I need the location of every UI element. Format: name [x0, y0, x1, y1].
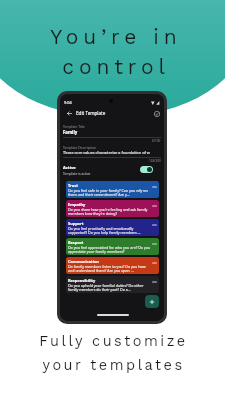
staticText: Template is active [63, 171, 91, 175]
staticText: Edit Template [76, 110, 106, 116]
button[interactable]: Empathy [66, 200, 159, 217]
staticText: Responsibility [68, 278, 96, 283]
staticText: Trust [68, 183, 78, 188]
staticText: 9:04 [64, 100, 72, 105]
button[interactable]: Support [66, 219, 159, 236]
staticText: Fully customize [39, 333, 188, 350]
staticText: Communication [68, 259, 99, 264]
staticText: control [62, 54, 170, 79]
button[interactable]: Back [64, 108, 74, 118]
staticText: Template Title [63, 124, 85, 128]
staticText: Do you feel appreciated for who you are?… [68, 245, 151, 254]
staticText: 124/300 [149, 159, 161, 163]
staticText: Do you uphold your familial duties? Do o… [68, 283, 151, 292]
staticText: Do you feel practically and emotionally … [68, 226, 151, 235]
button[interactable]: Communication [66, 257, 159, 274]
button[interactable]: Trust [66, 181, 159, 198]
staticText: 6/100 [152, 139, 161, 143]
staticText: Empathy [68, 202, 86, 207]
staticText: These core values characterize a foundat… [63, 150, 150, 155]
staticText: Do you feel safe in your family? Can you… [68, 188, 151, 197]
button[interactable]: Respect [66, 238, 159, 255]
staticText: Support [68, 221, 84, 226]
button[interactable]: Active [60, 164, 164, 175]
staticText: Active [63, 165, 76, 171]
staticText: Respect [68, 240, 84, 245]
staticText: Template Description [63, 145, 96, 149]
button[interactable]: Add value [145, 295, 159, 308]
staticText: your templates [42, 357, 185, 374]
staticText: You’re in [50, 24, 182, 49]
staticText: Family [63, 129, 78, 135]
button[interactable]: Responsibility [66, 276, 159, 293]
button[interactable]: Save [152, 109, 161, 118]
staticText: Do you share how you're feeling and ask … [68, 207, 151, 216]
staticText: Do family members listen to you? Do you … [68, 264, 151, 273]
